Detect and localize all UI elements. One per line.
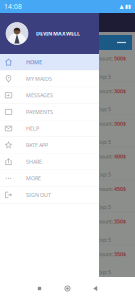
staticText: 14:08 (4, 2, 22, 11)
staticText: 400$ (114, 153, 126, 160)
staticText: Amount: (93, 120, 114, 127)
button[interactable]: Amount: (0, 115, 135, 148)
button[interactable]: PAYMENTS (0, 104, 99, 120)
button[interactable]: Amount: (0, 213, 135, 246)
staticText: 350$ (114, 251, 126, 258)
staticText: 300$ (114, 120, 126, 127)
staticText: Exp: 5 (97, 73, 111, 80)
staticText: ▮▮ (125, 3, 131, 10)
button[interactable]: MESSAGES (0, 87, 99, 104)
staticText: 450$ (114, 185, 126, 192)
button[interactable]: HELP (0, 120, 99, 137)
staticText: Exp: 5 (97, 171, 111, 178)
button[interactable]: RATE APP (0, 137, 99, 154)
staticText: RATE APP (26, 142, 48, 149)
staticText: Exp: 5 (97, 138, 111, 145)
staticText: DEVIN MAXWELL (36, 30, 80, 37)
staticText: 300$ (114, 88, 126, 95)
staticText: Amount: (93, 251, 114, 258)
staticText: SHARE (26, 158, 42, 165)
staticText: Amount: (93, 185, 114, 192)
staticText: MORE (26, 175, 41, 182)
staticText: Amount: (93, 55, 114, 62)
staticText: ▲ (119, 3, 123, 10)
staticText: HOME (26, 59, 42, 66)
button[interactable]: Recent apps (28, 277, 50, 300)
staticText: 500$ (114, 55, 126, 62)
button[interactable]: Amount: (0, 180, 135, 213)
staticText: Amount: (93, 88, 114, 95)
button[interactable]: Amount: (0, 148, 135, 180)
button[interactable]: Amount: (0, 83, 135, 115)
staticText: 350$ (114, 218, 126, 225)
button[interactable]: SIGN OUT (0, 187, 99, 203)
staticText: Exp: 5 (97, 106, 111, 113)
staticText: Exp: 5 (97, 203, 111, 211)
button[interactable]: Amount: (0, 50, 135, 83)
button[interactable]: HOME (0, 54, 99, 71)
button[interactable]: Amount: (0, 246, 135, 278)
staticText: Amount: (93, 218, 114, 225)
staticText: Exp: 5 (97, 269, 111, 276)
staticText: Exp: 5 (97, 236, 111, 243)
button[interactable]: Home (56, 277, 78, 300)
staticText: HELP (26, 125, 39, 132)
staticText: MESSAGES (26, 92, 53, 99)
staticText: MY MAIDS (26, 75, 52, 82)
button[interactable]: MY MAIDS (0, 71, 99, 87)
button[interactable]: Back (84, 277, 106, 300)
staticText: PAYMENTS (26, 108, 53, 115)
staticText: Amount: (93, 153, 114, 160)
button[interactable]: MORE (0, 170, 99, 187)
button[interactable]: SHARE (0, 154, 99, 170)
staticText: SIGN OUT (26, 191, 51, 198)
